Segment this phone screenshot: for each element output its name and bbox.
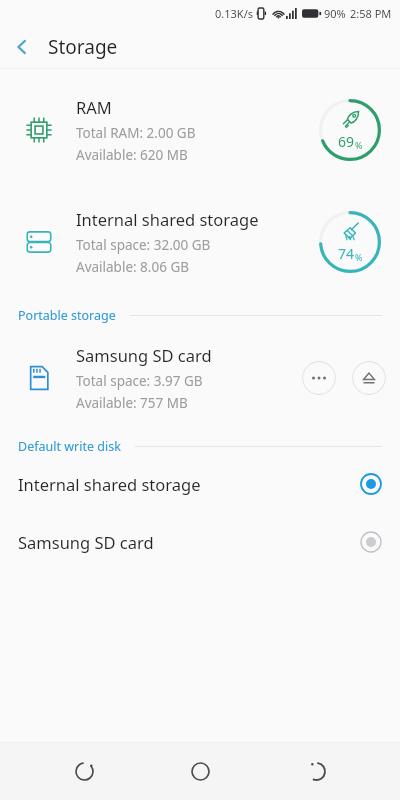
staticText: 2:58 PM — [350, 6, 392, 21]
button[interactable]: RAM — [0, 81, 400, 179]
staticText: Internal shared storage — [18, 473, 360, 495]
staticText: % — [355, 251, 363, 263]
button[interactable]: Home — [168, 743, 232, 800]
button[interactable]: Internal shared storage — [0, 193, 400, 291]
staticText: % — [355, 139, 363, 151]
button[interactable]: More options — [302, 361, 336, 395]
staticText: 90% — [324, 6, 346, 21]
staticText: RAM — [76, 96, 112, 118]
button[interactable]: Eject SD card — [352, 361, 386, 395]
staticText: Samsung SD card — [18, 531, 360, 553]
button[interactable]: Recents — [52, 743, 116, 800]
staticText: Total RAM: 2.00 GB — [76, 124, 196, 142]
button[interactable]: Back — [284, 743, 348, 800]
button[interactable]: RAM usage 69 percent — [314, 94, 386, 166]
button[interactable]: Internal shared storage usage 74 percent — [314, 206, 386, 278]
staticText: 0.13K/s — [215, 6, 253, 21]
staticText: 74 — [338, 244, 355, 263]
staticText: Total space: 3.97 GB — [76, 372, 203, 390]
button[interactable]: Samsung SD card — [0, 332, 400, 424]
staticText: Storage — [48, 34, 118, 60]
staticText: Available: 8.06 GB — [76, 258, 190, 276]
staticText: Available: 620 MB — [76, 146, 188, 164]
staticText: Default write disk — [18, 438, 121, 455]
button[interactable]: Internal shared storage — [0, 455, 400, 513]
staticText: Available: 757 MB — [76, 394, 188, 412]
button[interactable]: Back — [0, 26, 44, 68]
staticText: Total space: 32.00 GB — [76, 236, 211, 254]
staticText: Samsung SD card — [76, 344, 212, 366]
staticText: Portable storage — [18, 307, 116, 324]
staticText: Internal shared storage — [76, 208, 259, 230]
button[interactable]: Samsung SD card — [0, 513, 400, 571]
staticText: 69 — [338, 132, 355, 151]
